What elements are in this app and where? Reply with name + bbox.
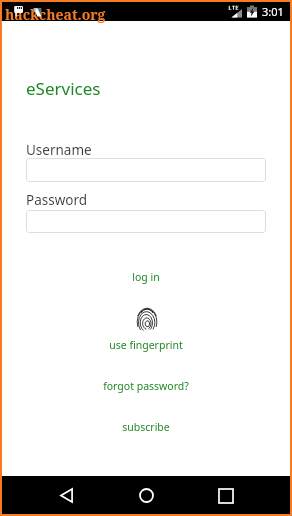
button[interactable]: log in	[2, 270, 290, 284]
staticText: hackcheat.org	[5, 5, 106, 24]
button[interactable]: use fingerprint	[2, 338, 290, 352]
staticText: 3:01	[262, 4, 284, 19]
button[interactable]: Home	[128, 480, 164, 510]
button[interactable]: subscribe	[2, 420, 290, 434]
button[interactable]: Use fingerprint	[136, 307, 158, 336]
button[interactable]: Recent apps	[208, 481, 244, 511]
button[interactable]: forgot password?	[2, 379, 290, 393]
staticText: eServices	[26, 77, 101, 100]
button[interactable]: Back	[48, 480, 84, 510]
staticText: Password	[26, 191, 88, 209]
button[interactable]	[26, 210, 266, 233]
staticText: log in	[132, 270, 160, 284]
staticText: use fingerprint	[109, 338, 183, 352]
staticText: Username	[26, 141, 92, 159]
staticText: forgot password?	[103, 379, 189, 393]
button[interactable]	[26, 158, 266, 182]
staticText: subscribe	[122, 420, 170, 434]
